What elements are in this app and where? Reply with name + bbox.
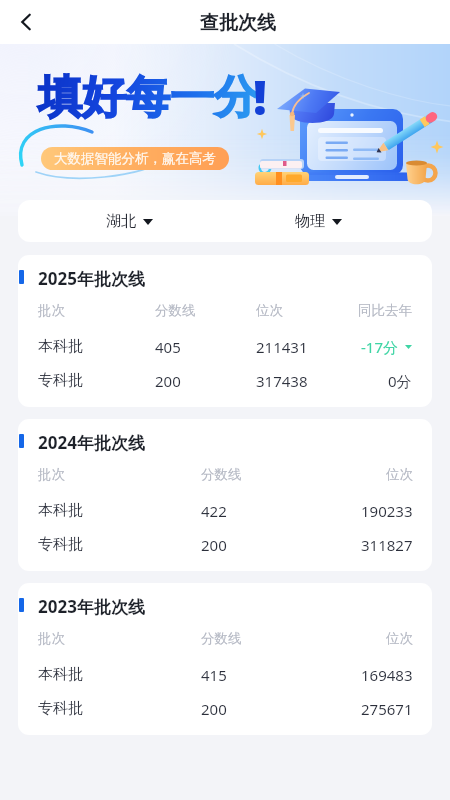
staticText: 同比去年 [358, 302, 412, 319]
staticText: 查批次线 [200, 11, 276, 35]
staticText: 专科批 [38, 535, 83, 554]
staticText: 2025年批次线 [38, 267, 145, 290]
staticText: 湖北 [106, 212, 136, 231]
staticText: 2023年批次线 [38, 595, 145, 618]
staticText: 211431 [256, 337, 308, 357]
staticText: 275671 [361, 699, 413, 719]
staticText: 本科批 [38, 501, 83, 520]
staticText: 405 [155, 337, 181, 357]
staticText: 317438 [256, 371, 308, 391]
staticText: 422 [201, 501, 227, 521]
staticText: 专科批 [38, 699, 83, 718]
staticText: 0分 [388, 371, 412, 391]
staticText: -17分 [361, 337, 398, 357]
staticText: 200 [155, 371, 181, 391]
button[interactable]: 2024年批次线 [18, 419, 432, 571]
button[interactable]: 2023年批次线 [18, 583, 432, 735]
staticText: 批次 [38, 630, 65, 647]
staticText: 专科批 [38, 371, 83, 390]
staticText: 批次 [38, 466, 65, 483]
staticText: 填好每一分 [38, 70, 258, 125]
staticText: 物理 [295, 212, 325, 231]
staticText: 分数线 [201, 466, 242, 483]
staticText: 分数线 [201, 630, 242, 647]
button[interactable]: 2025年批次线 [18, 255, 432, 407]
staticText: 190233 [361, 501, 413, 521]
button[interactable]: Back [6, 2, 46, 42]
button[interactable]: 物理 [295, 200, 342, 242]
staticText: 分数线 [155, 302, 196, 319]
staticText: 位次 [386, 630, 413, 647]
staticText: 169483 [361, 665, 413, 685]
staticText: 位次 [386, 466, 413, 483]
button[interactable]: 湖北 [106, 200, 153, 242]
staticText: 415 [201, 665, 227, 685]
staticText: 批次 [38, 302, 65, 319]
staticText: 311827 [361, 535, 413, 555]
staticText: 200 [201, 699, 227, 719]
staticText: 本科批 [38, 337, 83, 356]
staticText: 大数据智能分析，赢在高考 [54, 150, 216, 167]
staticText: 2024年批次线 [38, 431, 145, 454]
staticText: ! [253, 64, 267, 129]
staticText: 200 [201, 535, 227, 555]
staticText: 位次 [256, 302, 283, 319]
staticText: 本科批 [38, 665, 83, 684]
